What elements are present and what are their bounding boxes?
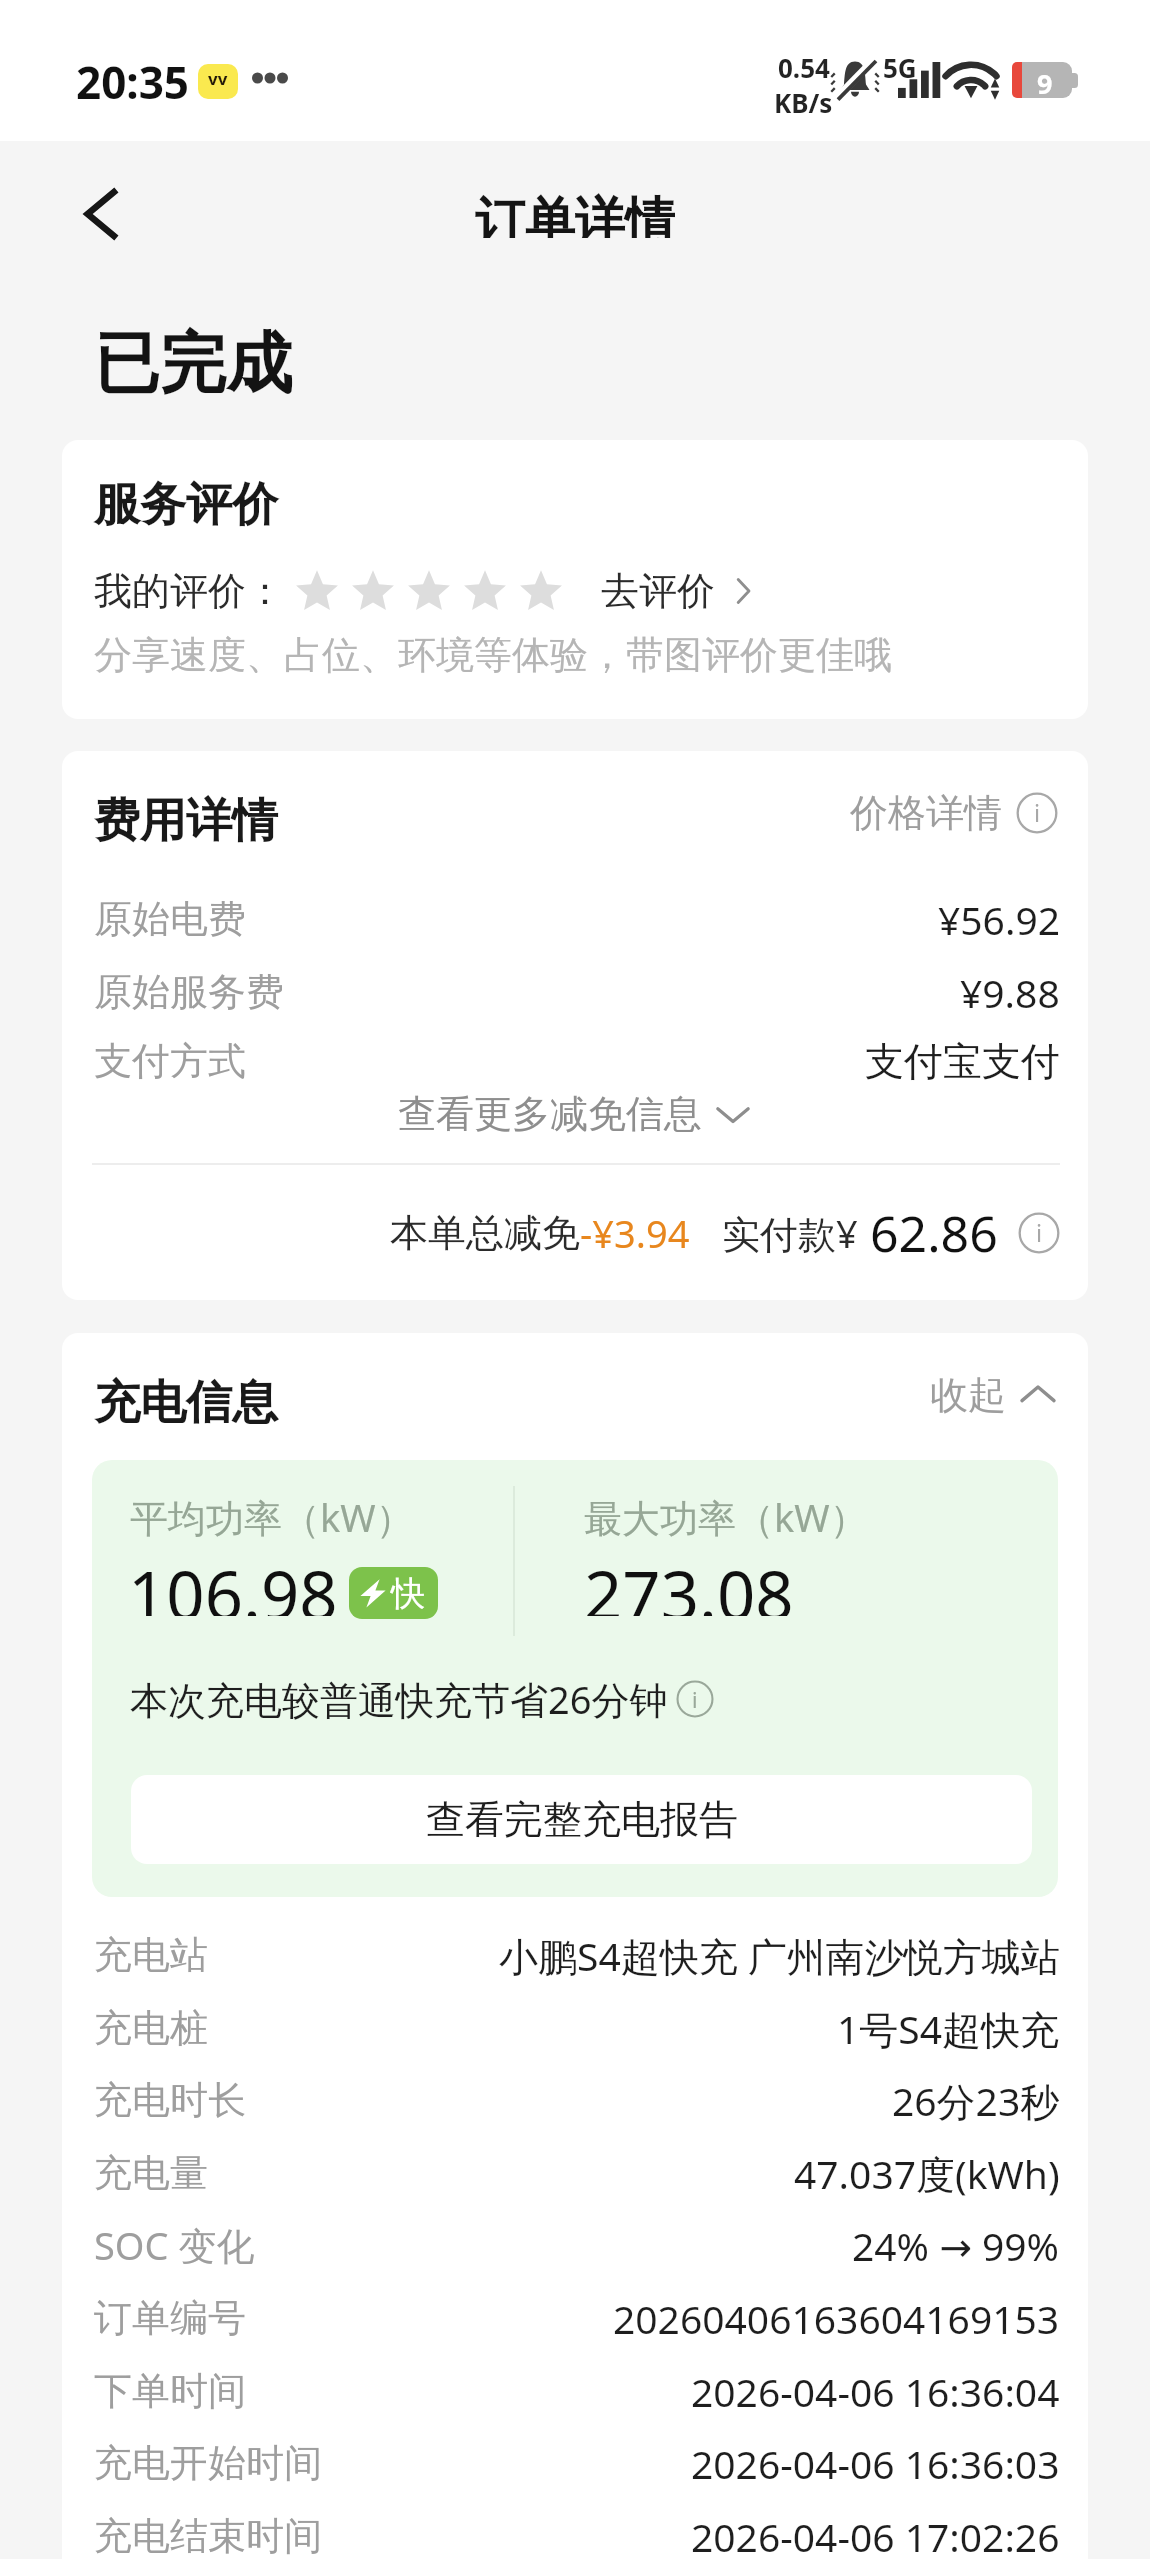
staticText: 订单详情 [475, 190, 675, 238]
staticText: SOC 变化 [94, 2219, 255, 2271]
staticText: ¥9.88 [960, 966, 1060, 1019]
staticText: i [1036, 1217, 1043, 1249]
staticText: i [692, 1685, 698, 1714]
staticText: -¥3.94 [580, 1207, 690, 1259]
staticText: 实付款¥ [722, 1207, 858, 1259]
staticText: 9 [1037, 65, 1053, 101]
staticText: 最大功率（kW） [584, 1491, 868, 1543]
staticText: 订单编号 [94, 2294, 246, 2342]
staticText: 我的评价： [94, 567, 284, 615]
staticText: 原始电费 [94, 895, 246, 943]
staticText: 价格详情 [850, 789, 1002, 837]
staticText: 收起 [930, 1371, 1006, 1419]
staticText: 查看更多减免信息 [398, 1090, 702, 1138]
staticText: 费用详情 [94, 792, 278, 850]
button[interactable]: Time saved info [676, 1680, 714, 1718]
staticText: 5G [883, 50, 917, 85]
staticText: 20260406163604169153 [613, 2292, 1060, 2345]
staticText: 支付宝支付 [865, 1037, 1060, 1086]
staticText: KB/s [774, 85, 833, 120]
staticText: ᵛᵛ [208, 64, 228, 99]
staticText: 原始服务费 [94, 968, 284, 1016]
staticText: 快 [391, 1572, 425, 1615]
staticText: 服务评价 [94, 476, 278, 534]
button[interactable]: 价格详情 [850, 789, 1058, 837]
staticText: i [1034, 797, 1041, 829]
staticText: 已完成 [94, 322, 292, 405]
staticText: 20:35 [76, 52, 190, 112]
staticText: 本单总减免 [390, 1209, 580, 1257]
staticText: 充电开始时间 [94, 2439, 322, 2487]
staticText: 充电站 [94, 1931, 208, 1979]
staticText: 24% → 99% [852, 2219, 1060, 2272]
button[interactable]: 收起 [930, 1371, 1058, 1419]
staticText: 1号S4超快充 [837, 2002, 1060, 2055]
staticText: 充电结束时间 [94, 2512, 322, 2559]
staticText: 2026-04-06 16:36:03 [691, 2437, 1060, 2490]
staticText: 2026-04-06 16:36:04 [691, 2365, 1060, 2418]
staticText: 26分23秒 [892, 2074, 1060, 2127]
staticText: 分享速度、占位、环境等体验，带图评价更佳哦 [94, 631, 892, 679]
staticText: 充电量 [94, 2149, 208, 2197]
staticText: 平均功率（kW） [130, 1491, 414, 1543]
staticText: 查看完整充电报告 [426, 1795, 738, 1844]
staticText: 充电时长 [94, 2076, 246, 2124]
staticText: 充电桩 [94, 2004, 208, 2052]
staticText: 273.08 [584, 1548, 794, 1616]
button[interactable]: 查看更多减免信息 [398, 1090, 752, 1138]
button[interactable]: 我的评价： [94, 557, 758, 625]
staticText: 62.86 [870, 1199, 998, 1267]
staticText: 2026-04-06 17:02:26 [691, 2510, 1060, 2559]
staticText: 小鹏S4超快充 广州南沙悦方城站 [499, 1929, 1060, 1982]
staticText: 本次充电较普通快充节省26分钟 [130, 1673, 668, 1725]
staticText: 106.98 [128, 1548, 338, 1616]
staticText: 0.54 [778, 50, 830, 85]
staticText: ¥56.92 [938, 893, 1060, 946]
button[interactable]: Back [48, 160, 156, 268]
staticText: 去评价 [601, 567, 715, 615]
staticText: 充电信息 [94, 1374, 278, 1432]
button[interactable]: 查看完整充电报告 [131, 1775, 1032, 1864]
staticText: 下单时间 [94, 2367, 246, 2415]
staticText: 支付方式 [94, 1037, 246, 1085]
button[interactable]: Payment amount info [1018, 1212, 1060, 1254]
staticText: 47.037度(kWh) [794, 2147, 1060, 2200]
